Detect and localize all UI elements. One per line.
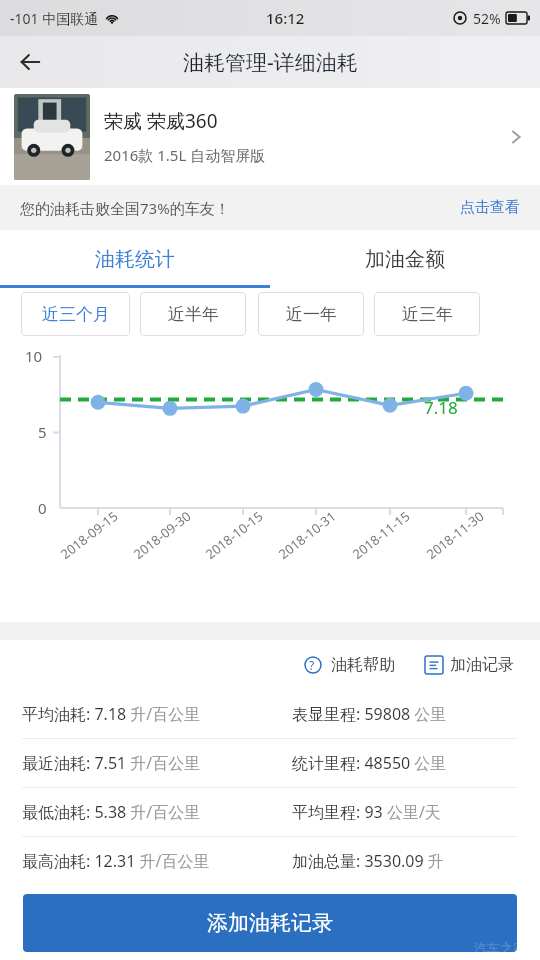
button[interactable]: 近三年 — [374, 292, 480, 336]
button[interactable]: Back — [8, 40, 52, 84]
staticText: 平均油耗: 7.18 升/百公里 — [22, 703, 201, 725]
staticText: 近一年 — [286, 304, 337, 325]
staticText: -101 中国联通 — [10, 9, 99, 28]
button[interactable]: 荣威 荣威360 — [0, 88, 540, 185]
button[interactable]: 加油记录 — [421, 651, 518, 679]
staticText: 统计里程: 48550 公里 — [292, 752, 447, 774]
button[interactable]: 您的油耗击败全国73%的车友！ — [0, 185, 540, 230]
staticText: 2018-09-30 — [130, 507, 194, 563]
staticText: 油耗管理-详细油耗 — [183, 48, 358, 77]
staticText: 加油记录 — [450, 655, 514, 675]
staticText: 2016款 1.5L 自动智屏版 — [104, 145, 266, 165]
staticText: 您的油耗击败全国73%的车友！ — [20, 198, 230, 218]
staticText: 油耗统计 — [95, 247, 175, 272]
staticText: 7.18 — [424, 396, 458, 419]
button[interactable]: ? — [300, 651, 399, 679]
staticText: 5 — [38, 422, 47, 442]
staticText: ? — [309, 657, 315, 673]
staticText: 10 — [25, 346, 43, 366]
button[interactable]: 添加油耗记录 — [23, 894, 517, 952]
staticText: 点击查看 — [460, 198, 520, 217]
staticText: 最高油耗: 12.31 升/百公里 — [22, 850, 210, 872]
staticText: 2018-10-15 — [202, 507, 266, 563]
staticText: 2018-11-15 — [349, 507, 413, 563]
staticText: 加油金额 — [365, 247, 445, 272]
staticText: 2018-09-15 — [57, 507, 121, 563]
button[interactable]: 近三个月 — [21, 292, 130, 336]
staticText: 52% — [473, 9, 501, 28]
staticText: 荣威 荣威360 — [104, 108, 218, 134]
staticText: 2018-11-30 — [423, 507, 487, 563]
staticText: 最低油耗: 5.38 升/百公里 — [22, 801, 201, 823]
staticText: 平均里程: 93 公里/天 — [292, 801, 441, 823]
staticText: 表显里程: 59808 公里 — [292, 703, 447, 725]
staticText: 最近油耗: 7.51 升/百公里 — [22, 752, 201, 774]
staticText: 添加油耗记录 — [207, 910, 333, 936]
staticText: 油耗帮助 — [331, 655, 395, 675]
staticText: 汽车之家 — [474, 940, 526, 956]
staticText: 16:12 — [266, 8, 305, 28]
staticText: 近三个月 — [42, 304, 110, 325]
staticText: 近半年 — [168, 304, 219, 325]
button[interactable]: 加油金额 — [270, 230, 540, 288]
button[interactable]: 近一年 — [258, 292, 364, 336]
button[interactable]: 近半年 — [140, 292, 246, 336]
staticText: 0 — [38, 498, 47, 518]
staticText: 2018-10-31 — [275, 507, 339, 563]
staticText: 近三年 — [402, 304, 453, 325]
staticText: 加油总量: 3530.09 升 — [292, 850, 444, 872]
button[interactable]: 油耗统计 — [0, 230, 270, 288]
